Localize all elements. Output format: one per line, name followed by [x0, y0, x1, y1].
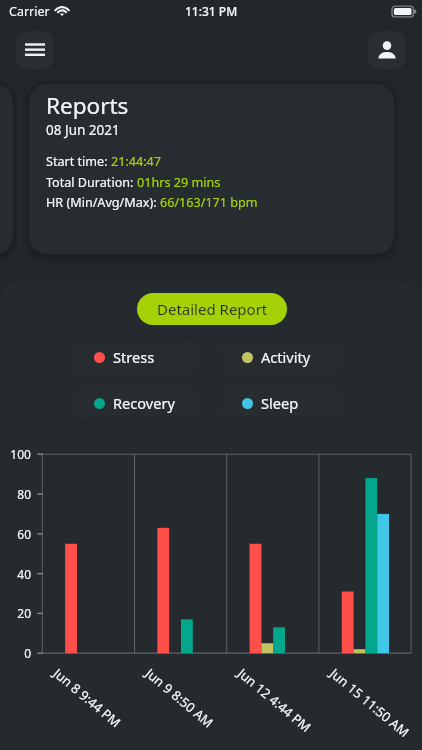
staticText: 66/163/171 bpm: [160, 194, 258, 211]
button[interactable]: Sleep: [221, 387, 345, 419]
staticText: Total Duration:: [46, 174, 137, 191]
staticText: Sleep: [261, 393, 299, 413]
staticText: 01hrs 29 mins: [137, 174, 221, 191]
staticText: Detailed Report: [157, 299, 268, 319]
staticText: HR (Min/Avg/Max):: [46, 194, 160, 211]
staticText: Reports: [46, 90, 129, 121]
button[interactable]: Recovery: [73, 387, 199, 419]
staticText: Activity: [261, 347, 311, 367]
staticText: 11:31 PM: [185, 3, 238, 19]
staticText: Stress: [113, 347, 155, 367]
staticText: 08 Jun 2021: [46, 121, 120, 139]
staticText: Recovery: [113, 393, 175, 413]
staticText: Carrier: [9, 3, 50, 20]
button[interactable]: Stress: [73, 341, 199, 373]
button[interactable]: Detailed Report: [137, 293, 287, 325]
button[interactable]: Reports: [29, 84, 394, 254]
button[interactable]: Menu: [16, 31, 54, 69]
staticText: 21:44:47: [111, 153, 161, 170]
button[interactable]: Profile: [368, 31, 406, 69]
staticText: Start time:: [46, 153, 111, 170]
button[interactable]: Activity: [221, 341, 345, 373]
